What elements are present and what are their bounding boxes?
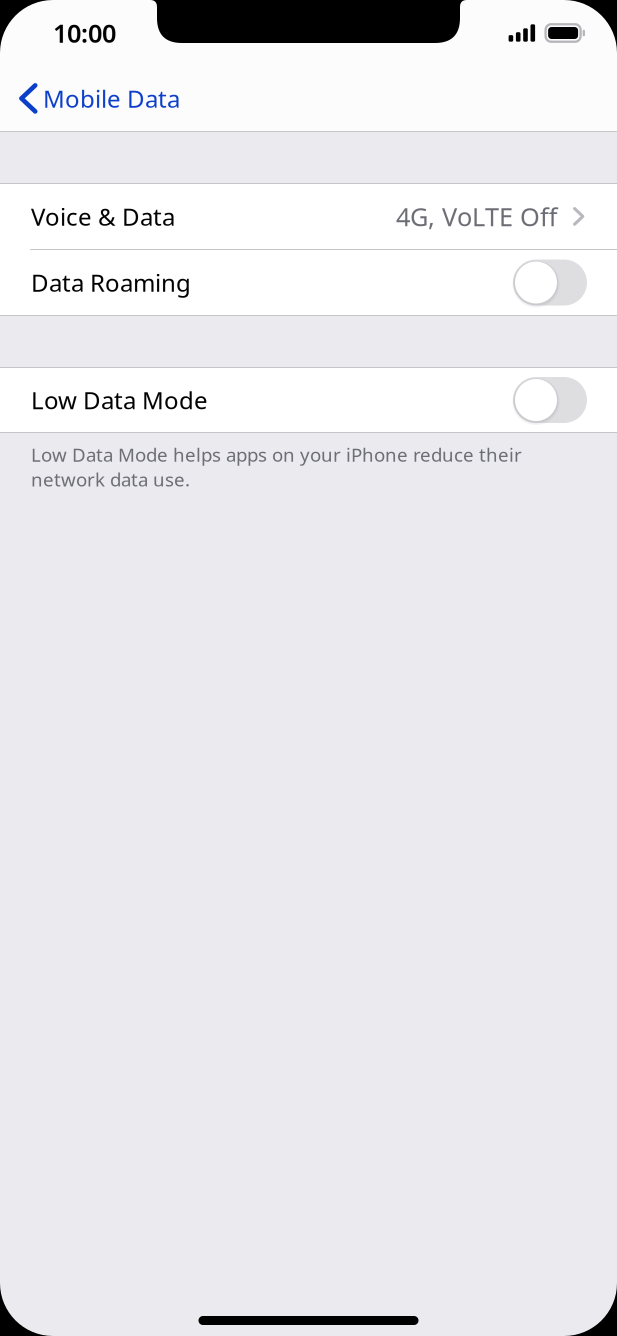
button[interactable]: Low Data Mode bbox=[513, 377, 587, 423]
button[interactable]: Data Roaming bbox=[513, 259, 587, 305]
button[interactable]: Mobile Data bbox=[0, 66, 617, 131]
staticText: Low Data Mode helps apps on your iPhone … bbox=[31, 442, 522, 492]
staticText: 10:00 bbox=[53, 16, 116, 50]
staticText: Low Data Mode bbox=[31, 384, 208, 416]
staticText: Voice & Data bbox=[31, 201, 175, 232]
staticText: Data Roaming bbox=[31, 267, 191, 298]
staticText: 4G, VoLTE Off bbox=[396, 200, 557, 233]
button[interactable]: Voice & Data bbox=[0, 184, 617, 249]
staticText: Mobile Data bbox=[43, 83, 180, 114]
